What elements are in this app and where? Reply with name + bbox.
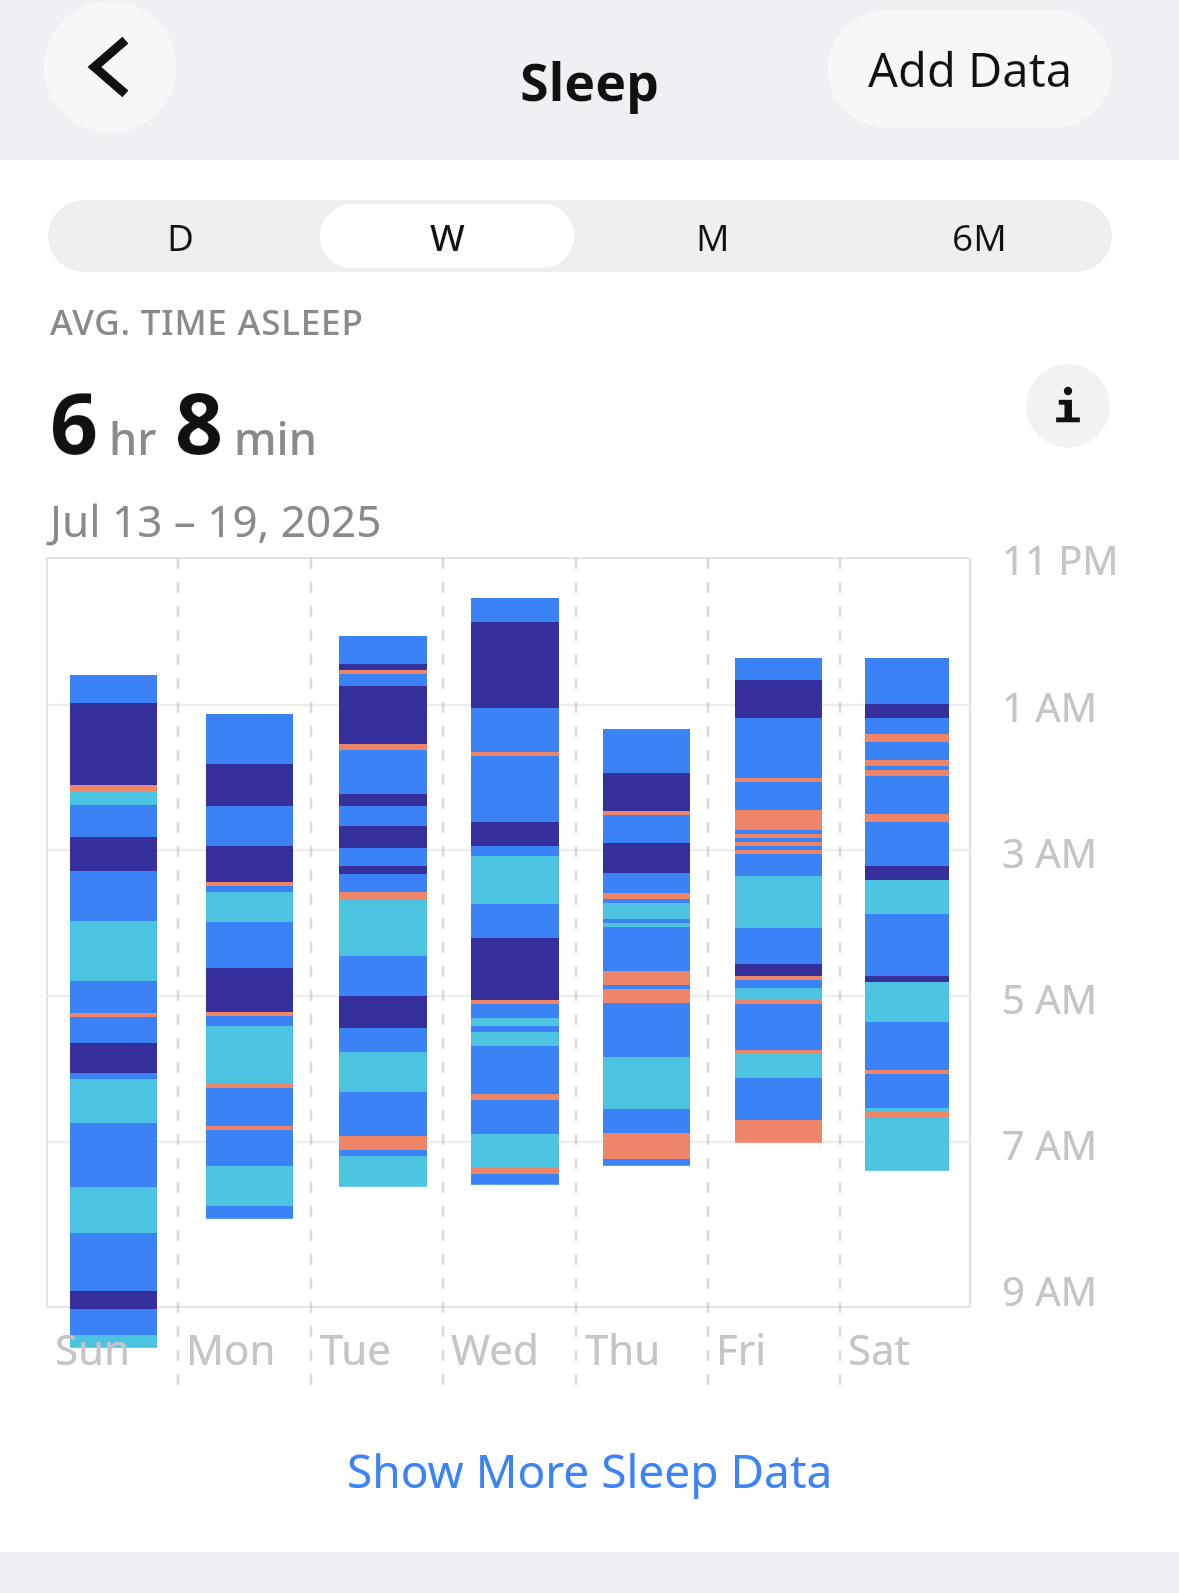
staticText: AVG. TIME ASLEEP [50,298,364,346]
staticText: min [234,407,317,468]
staticText: Tue [320,1320,391,1377]
staticText: Sun [55,1320,130,1377]
button[interactable]: Show More Sleep Data [0,1424,1179,1516]
staticText: 8 [175,364,224,478]
staticText: 9 AM [1002,1263,1098,1317]
staticText: Sleep [520,45,660,116]
staticText: D [167,211,195,261]
staticText: Thu [585,1320,661,1377]
button[interactable]: W [314,200,580,272]
staticText: 11 PM [1002,532,1119,586]
staticText: W [430,211,465,261]
staticText: Wed [451,1320,539,1377]
staticText: Add Data [868,37,1073,101]
staticText: hr [109,407,157,468]
button[interactable]: 6M [846,200,1112,272]
staticText: 7 AM [1002,1117,1098,1171]
staticText: Mon [186,1320,276,1377]
staticText: 5 AM [1002,971,1098,1025]
button[interactable]: Add Data [828,10,1112,128]
button[interactable]: Back [44,1,176,133]
staticText: 6M [952,211,1007,261]
button[interactable]: Information [1026,364,1110,448]
staticText: 1 AM [1002,679,1098,733]
staticText: Show More Sleep Data [347,1439,833,1502]
staticText: Fri [716,1320,766,1377]
button[interactable]: D [48,200,314,272]
button[interactable]: M [580,200,846,272]
staticText: 6 [50,364,99,478]
staticText: Sat [848,1320,910,1377]
staticText: M [696,211,730,261]
staticText: Jul 13 – 19, 2025 [50,490,382,550]
staticText: 3 AM [1002,825,1098,879]
